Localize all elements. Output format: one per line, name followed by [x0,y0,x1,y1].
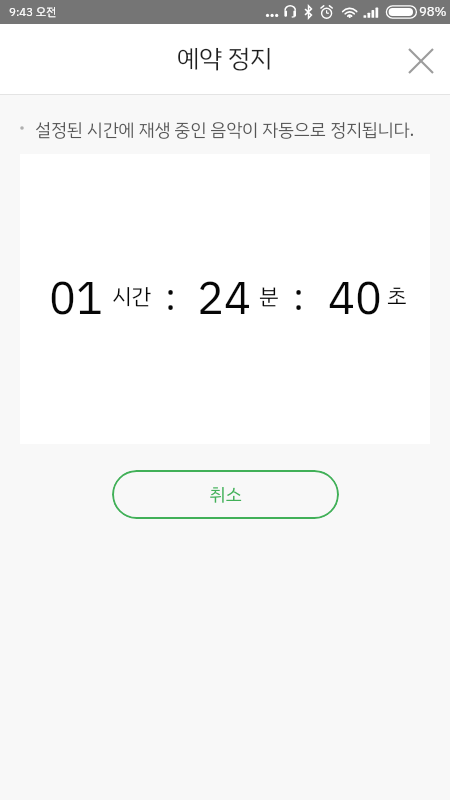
button[interactable]: Close [392,25,450,95]
staticText: 9:43 오전 [9,4,57,21]
staticText: : [293,269,305,326]
button[interactable]: 취소 [112,470,339,519]
staticText: 01 [49,265,104,333]
staticText: 예약 정지 [177,40,273,78]
staticText: 취소 [209,481,242,508]
staticText: : [165,269,177,326]
staticText: 시간 [112,280,152,313]
staticText: 40 [328,265,383,333]
staticText: 설정된 시간에 재생 중인 음악이 자동으로 정지됩니다. [35,117,415,144]
staticText: 초 [387,280,407,313]
staticText: 분 [259,280,279,313]
staticText: 98% [419,2,447,22]
staticText: 24 [197,265,252,333]
